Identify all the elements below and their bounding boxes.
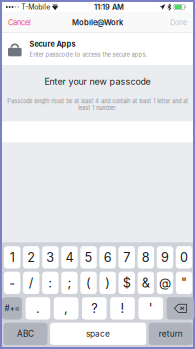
button[interactable]: 9 [157,246,173,268]
staticText: & [142,275,150,290]
button[interactable]: @ [157,272,173,294]
button[interactable]: #+= [2,297,22,319]
staticText: space [86,329,110,339]
button[interactable]: Done [166,14,191,31]
button[interactable]: , [54,297,78,319]
button[interactable]: ABC [3,323,47,345]
button[interactable]: 0 [176,246,192,268]
staticText: 3 [46,250,54,265]
staticText: : [48,275,52,290]
button[interactable]: / [23,272,39,294]
staticText: - [9,275,15,290]
button[interactable]: & [138,272,154,294]
button[interactable]: return [149,323,193,345]
button[interactable]: 4 [61,246,78,268]
staticText: @ [159,275,171,290]
staticText: #+= [4,303,19,313]
button[interactable]: 1 [4,246,20,268]
staticText: $ [123,275,131,290]
staticText: 5 [84,250,92,265]
staticText: Enter passcode to access the secure apps… [30,51,148,58]
button[interactable]: ? [82,297,107,319]
staticText: ABC [17,329,34,339]
staticText: 0 [180,250,188,265]
staticText: Done [170,18,187,27]
button[interactable]: ) [99,272,116,294]
staticText: T-Mobile [21,3,50,11]
staticText: , [64,301,68,316]
staticText: return [159,329,183,339]
button[interactable]: space [50,323,146,345]
staticText: ? [91,301,97,316]
button[interactable]: - [4,272,20,294]
button[interactable]: $ [118,272,135,294]
button[interactable]: 5 [80,246,97,268]
staticText: ) [105,275,110,290]
button[interactable]: Delete [167,297,194,319]
staticText: 4 [65,250,73,265]
staticText: 7 [123,250,130,265]
staticText: 6 [104,250,112,265]
button[interactable]: 6 [99,246,116,268]
staticText: / [29,275,34,290]
button[interactable]: 8 [138,246,154,268]
button[interactable]: ; [61,272,78,294]
button[interactable]: ! [110,297,135,319]
button[interactable]: . [26,297,50,319]
button[interactable]: Cancel [4,14,35,31]
staticText: 2 [27,250,35,265]
staticText: ( [86,275,91,290]
button[interactable]: 2 [23,246,39,268]
staticText: 11:19 AM [94,2,124,11]
staticText: Mobile@Work [72,18,123,27]
staticText: 8 [142,250,150,265]
staticText: Enter your new passcode [44,76,150,87]
staticText: . [36,301,40,316]
staticText: ! [120,301,124,316]
staticText: Passcode length must be at least 4 and c… [7,98,188,111]
staticText: ; [67,275,71,290]
button[interactable]: ( [80,272,97,294]
staticText: ' [149,301,153,316]
staticText: " [181,275,187,290]
button[interactable]: " [176,272,192,294]
button[interactable]: 3 [42,246,58,268]
staticText: Cancel [8,18,31,27]
staticText: 9 [161,250,169,265]
button[interactable]: ' [138,297,163,319]
staticText: Secure Apps [30,40,76,49]
button[interactable]: 7 [118,246,135,268]
button[interactable]: : [42,272,58,294]
staticText: 1 [10,250,15,265]
